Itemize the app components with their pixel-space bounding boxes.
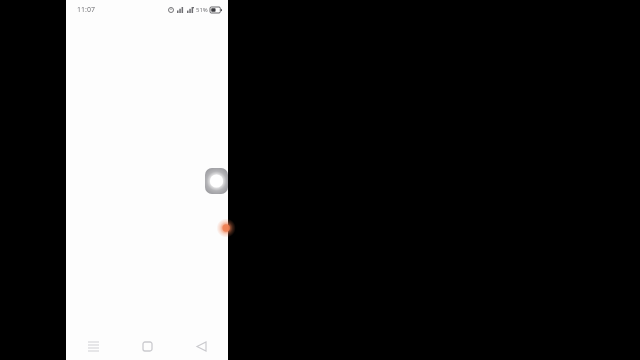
button[interactable]: Recording indicator xyxy=(213,212,229,244)
button[interactable]: Home xyxy=(120,332,174,360)
staticText: 51% xyxy=(196,6,208,14)
button[interactable]: Floating assistant xyxy=(205,168,228,194)
button[interactable]: Recent apps xyxy=(66,332,120,360)
staticText: 11:07 xyxy=(77,5,95,15)
button[interactable]: Back xyxy=(174,332,228,360)
